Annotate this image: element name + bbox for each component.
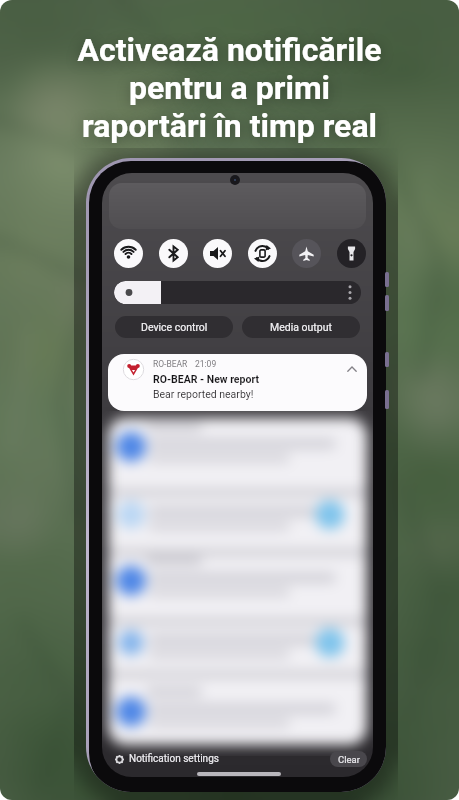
staticText: Media output: [270, 321, 332, 333]
staticText: RO-BEAR: [153, 359, 188, 369]
button[interactable]: [114, 281, 361, 304]
button[interactable]: RO-BEAR: [108, 354, 367, 411]
button[interactable]: [114, 239, 143, 268]
staticText: Bear reported nearby!: [153, 388, 254, 400]
button[interactable]: Device control: [115, 316, 233, 338]
staticText: 21:09: [195, 359, 217, 369]
staticText: RO-BEAR - New report: [153, 373, 260, 385]
staticText: Notification settings: [129, 753, 219, 765]
button[interactable]: [203, 239, 232, 268]
staticText: Clear: [338, 754, 360, 765]
button[interactable]: [292, 239, 321, 268]
button[interactable]: Clear: [330, 751, 367, 767]
staticText: Device control: [141, 321, 208, 333]
button[interactable]: Media output: [242, 316, 360, 338]
button[interactable]: Notification settings: [115, 752, 219, 766]
button[interactable]: [102, 411, 373, 756]
button[interactable]: [248, 239, 277, 268]
button[interactable]: [159, 239, 188, 268]
button[interactable]: [337, 239, 366, 268]
staticText: Activează notificările pentru a primi ra…: [0, 31, 459, 145]
